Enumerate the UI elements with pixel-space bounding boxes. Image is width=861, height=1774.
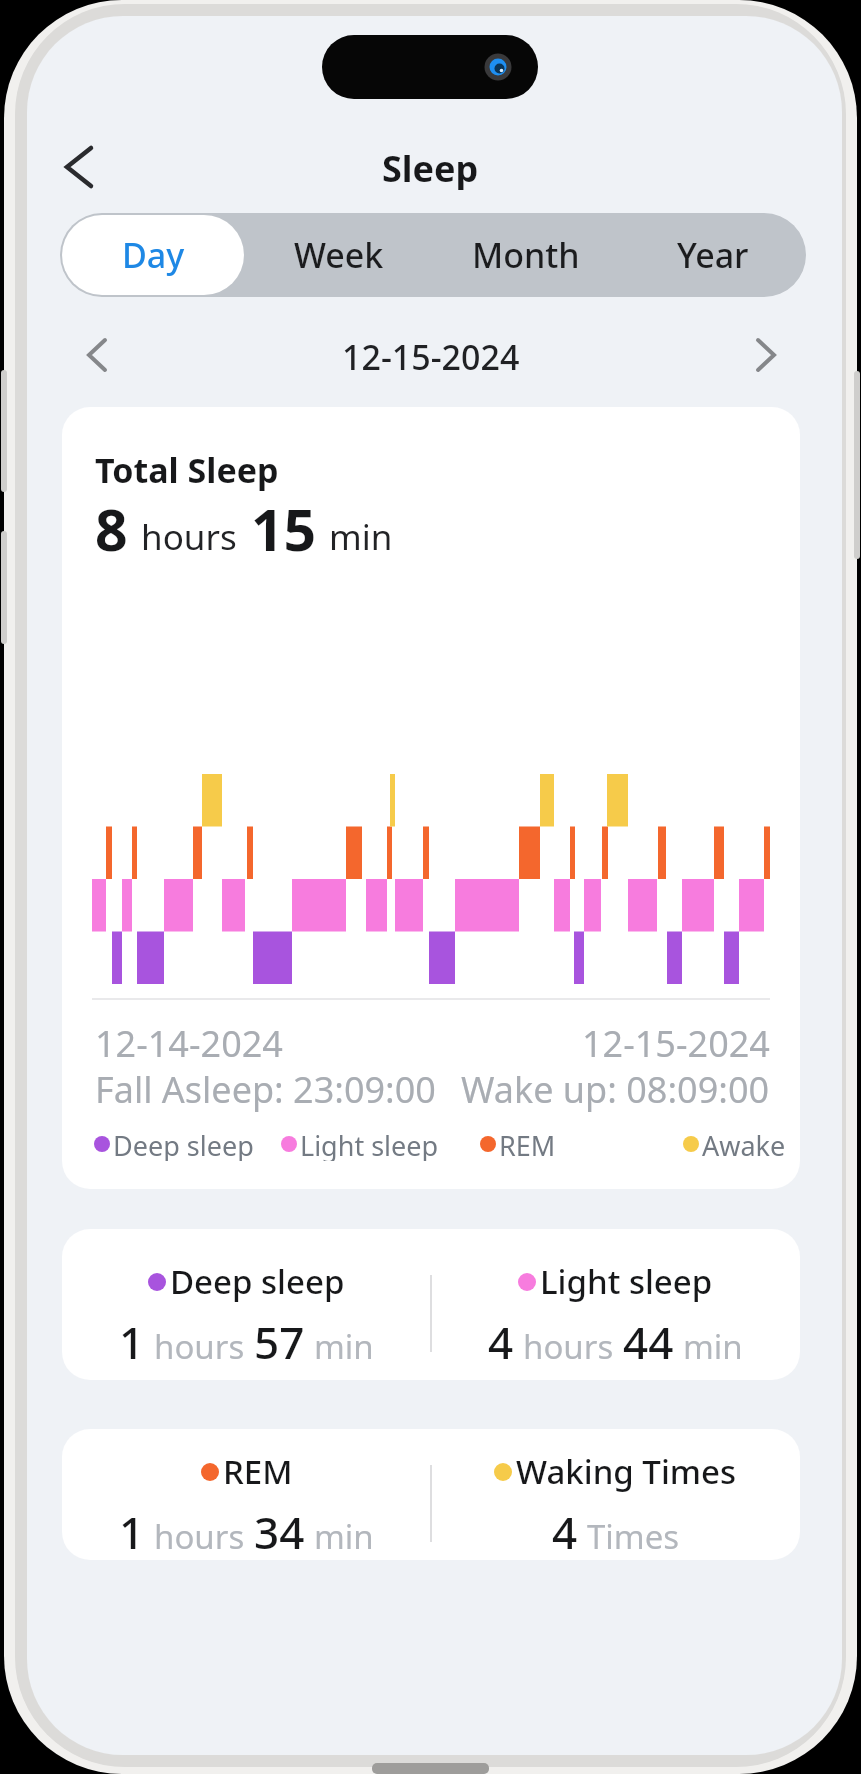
- staticText: Month: [472, 232, 580, 278]
- staticText: Year: [677, 232, 749, 278]
- staticText: 8: [95, 490, 128, 568]
- staticText: Week: [294, 232, 384, 278]
- staticText: Total Sleep: [95, 447, 279, 493]
- staticText: Awake: [702, 1127, 786, 1161]
- button[interactable]: Day: [62, 215, 244, 295]
- staticText: Fall Asleep: 23:09:00: [95, 1065, 436, 1114]
- staticText: Times: [587, 1514, 680, 1559]
- staticText: min: [683, 1324, 743, 1369]
- staticText: min: [329, 513, 393, 561]
- staticText: 57: [254, 1312, 305, 1372]
- staticText: min: [314, 1514, 374, 1559]
- button[interactable]: Week: [246, 213, 432, 297]
- staticText: hours: [154, 1324, 245, 1369]
- staticText: hours: [154, 1514, 245, 1559]
- staticText: 4: [552, 1502, 578, 1560]
- button[interactable]: Month: [432, 213, 619, 297]
- staticText: 1: [119, 1502, 145, 1560]
- staticText: hours: [523, 1324, 614, 1369]
- staticText: hours: [141, 513, 237, 561]
- staticText: 12-15-2024: [582, 1019, 770, 1068]
- staticText: 12-14-2024: [95, 1019, 283, 1068]
- staticText: Light sleep: [300, 1127, 439, 1161]
- staticText: Waking Times: [516, 1449, 737, 1494]
- staticText: 34: [254, 1502, 305, 1560]
- staticText: REM: [499, 1127, 556, 1161]
- staticText: REM: [223, 1449, 293, 1494]
- button[interactable]: [56, 144, 102, 190]
- button[interactable]: [75, 333, 119, 377]
- staticText: min: [314, 1324, 374, 1369]
- staticText: Deep sleep: [113, 1127, 254, 1161]
- staticText: 44: [623, 1312, 674, 1372]
- staticText: Deep sleep: [170, 1259, 345, 1304]
- staticText: 4: [488, 1312, 514, 1372]
- staticText: Day: [122, 232, 185, 278]
- button[interactable]: [744, 333, 788, 377]
- staticText: 12-15-2024: [342, 334, 520, 378]
- staticText: Sleep: [382, 144, 479, 190]
- staticText: Wake up: 08:09:00: [461, 1065, 770, 1114]
- staticText: Light sleep: [540, 1259, 713, 1304]
- button[interactable]: Year: [619, 213, 806, 297]
- staticText: 15: [251, 490, 317, 568]
- staticText: 1: [119, 1312, 145, 1372]
